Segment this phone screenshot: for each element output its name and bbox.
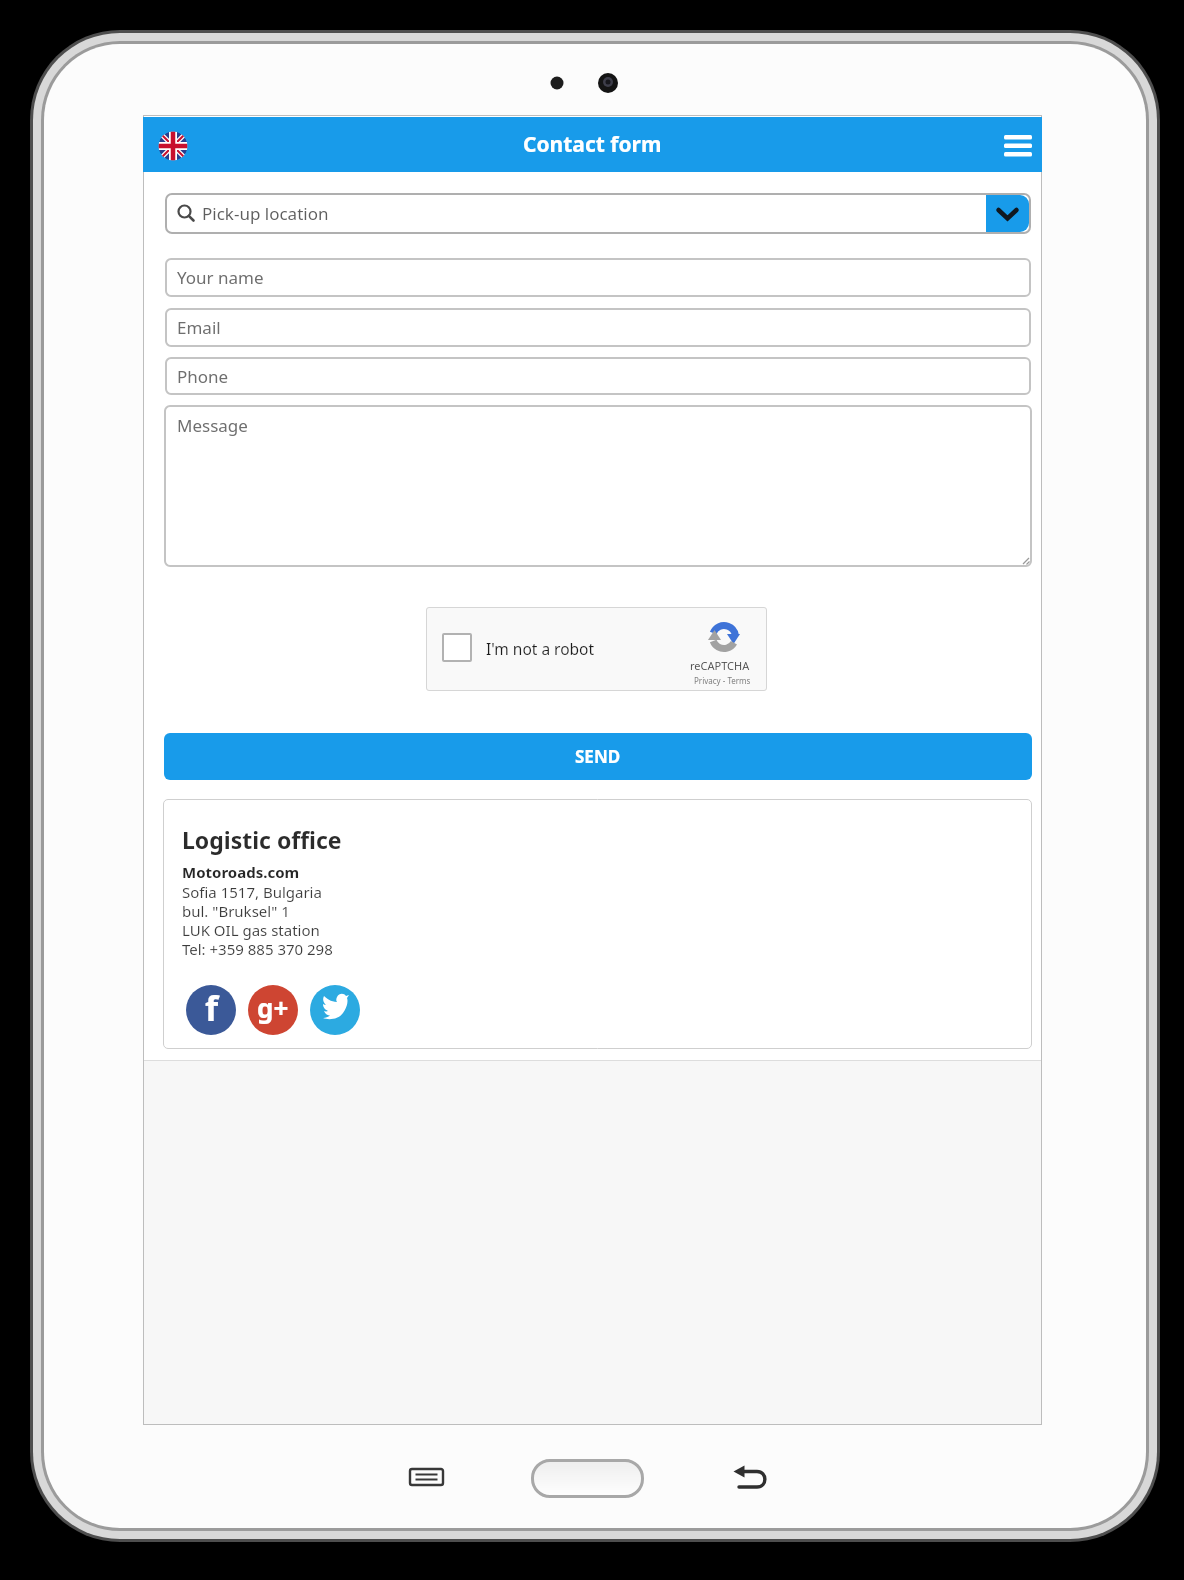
button[interactable]: Phone: [165, 357, 1031, 395]
button[interactable]: Email: [165, 308, 1031, 347]
button[interactable]: [158, 131, 188, 161]
button[interactable]: Message: [164, 405, 1032, 567]
button[interactable]: f: [186, 985, 236, 1035]
button[interactable]: SEND: [164, 733, 1032, 780]
staticText: Phone: [177, 365, 229, 388]
staticText: I'm not a robot: [486, 638, 595, 659]
staticText: Sofia 1517, Bulgaria bul. "Bruksel" 1 LU…: [182, 882, 333, 960]
button[interactable]: Pick-up location: [165, 193, 1031, 234]
button[interactable]: Your name: [165, 258, 1031, 297]
staticText: SEND: [575, 745, 621, 768]
button[interactable]: [1000, 134, 1036, 162]
staticText: Your name: [177, 266, 264, 289]
staticText: Message: [177, 414, 248, 437]
button[interactable]: [310, 985, 360, 1035]
staticText: f: [205, 985, 219, 1031]
staticText: Motoroads.com: [182, 862, 300, 882]
staticText: reCAPTCHA: [690, 658, 750, 673]
button[interactable]: [986, 195, 1029, 232]
staticText: Logistic office: [182, 824, 342, 855]
staticText: g+: [257, 990, 289, 1025]
staticText: Pick-up location: [202, 202, 329, 225]
button[interactable]: [442, 633, 472, 662]
button[interactable]: g+: [248, 985, 298, 1035]
button[interactable]: [408, 1462, 448, 1492]
staticText: Privacy - Terms: [694, 675, 751, 686]
staticText: Email: [177, 316, 221, 339]
button[interactable]: [531, 1459, 644, 1498]
staticText: Contact form: [523, 130, 662, 159]
button[interactable]: [730, 1462, 776, 1494]
